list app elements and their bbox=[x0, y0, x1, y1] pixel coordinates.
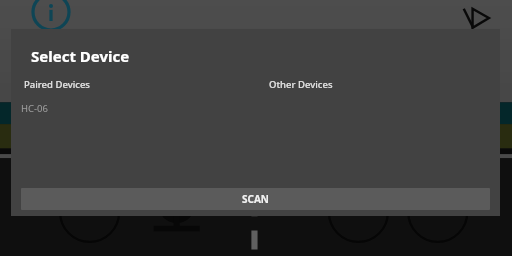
staticText: Other Devices bbox=[269, 78, 333, 91]
staticText: SCAN bbox=[242, 192, 269, 206]
button[interactable]: Info bbox=[31, 0, 71, 32]
staticText: Paired Devices bbox=[24, 78, 90, 91]
button[interactable]: HC-06 bbox=[11, 99, 255, 117]
staticText: Select Device bbox=[31, 46, 130, 66]
button[interactable]: SCAN bbox=[21, 188, 490, 210]
button[interactable]: Send bbox=[461, 2, 495, 36]
staticText: HC-06 bbox=[21, 102, 48, 115]
